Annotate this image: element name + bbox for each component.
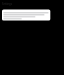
button[interactable]	[0, 0, 64, 75]
staticText: Settings	[2, 2, 12, 6]
